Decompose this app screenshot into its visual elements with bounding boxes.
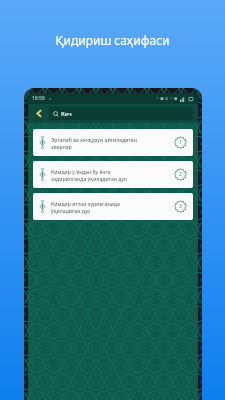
staticText: эздирилганда ўқиладиган дуо: [51, 175, 128, 182]
staticText: Кимдир иттаи хурикганида: [51, 200, 120, 207]
staticText: Эрталаб ва кечқурун айтиладиган: [51, 136, 137, 143]
staticText: 2: [179, 171, 182, 178]
staticText: 1: [179, 139, 182, 146]
button[interactable]: Кеч: [49, 107, 193, 120]
button[interactable]: Back: [33, 107, 46, 120]
staticText: 3: [179, 203, 182, 210]
staticText: Қидириш саҳифаси: [55, 32, 170, 48]
button[interactable]: Эрталаб ва кечқурун айтиладиган: [33, 129, 193, 156]
button[interactable]: Кимдир иттаи хурикганида: [33, 193, 193, 220]
staticText: Кимдир у ёкдан бу ёнга: [51, 168, 111, 175]
staticText: ◦ ▪ ▫ ◦ ▪: [156, 95, 178, 102]
staticText: Кеч: [61, 110, 72, 118]
button[interactable]: Кимдир у ёкдан бу ёнга: [33, 161, 193, 188]
staticText: ўқиладиган дуо: [51, 207, 91, 214]
staticText: 19:56: [32, 95, 45, 102]
staticText: зикрлар: [51, 143, 72, 150]
